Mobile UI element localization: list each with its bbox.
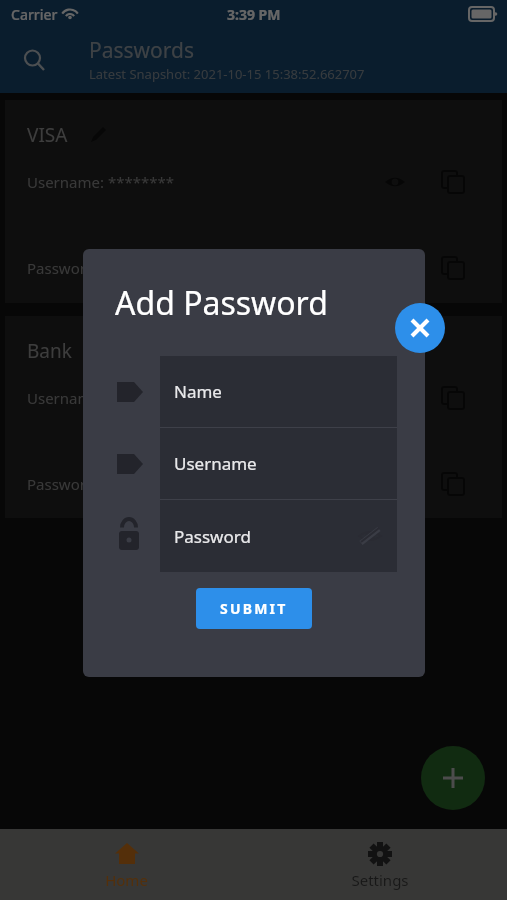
staticText: Username: ******** [27,388,175,408]
staticText: SUBMIT [220,599,288,618]
button[interactable]: VISA [5,100,502,303]
staticText: Name [174,380,222,403]
button[interactable]: Copy [438,167,468,197]
staticText: Password [174,525,251,548]
staticText: Username [174,452,257,475]
button[interactable]: Username [160,428,397,499]
button[interactable]: Name [160,356,397,427]
staticText: Settings [351,870,409,890]
button[interactable]: Reveal [380,383,410,413]
button[interactable]: Close [395,303,445,353]
staticText: Home [105,870,148,890]
button[interactable]: Add password [421,746,485,810]
button[interactable]: Show password [355,521,385,551]
staticText: Latest Snapshot: 2021-10-15 15:38:52.662… [89,65,365,83]
button[interactable]: Copy [438,253,468,283]
staticText: Bank [27,338,72,364]
button[interactable]: Settings [253,829,507,900]
button[interactable]: Bank [5,316,502,518]
button[interactable]: Copy [438,383,468,413]
staticText: Add Password [115,281,328,325]
staticText: Carrier [11,5,58,24]
staticText: Passwords [89,36,195,65]
staticText: Password: ******** [27,474,169,494]
button[interactable]: Home [0,829,253,900]
button[interactable]: SUBMIT [196,588,312,629]
button[interactable]: Search [13,39,57,83]
button[interactable]: Copy [438,469,468,499]
staticText: VISA [27,122,68,148]
button[interactable]: Password [160,500,397,572]
staticText: Username: ******** [27,172,175,192]
staticText: 3:39 PM [227,5,281,24]
staticText: Password: ******** [27,258,169,278]
